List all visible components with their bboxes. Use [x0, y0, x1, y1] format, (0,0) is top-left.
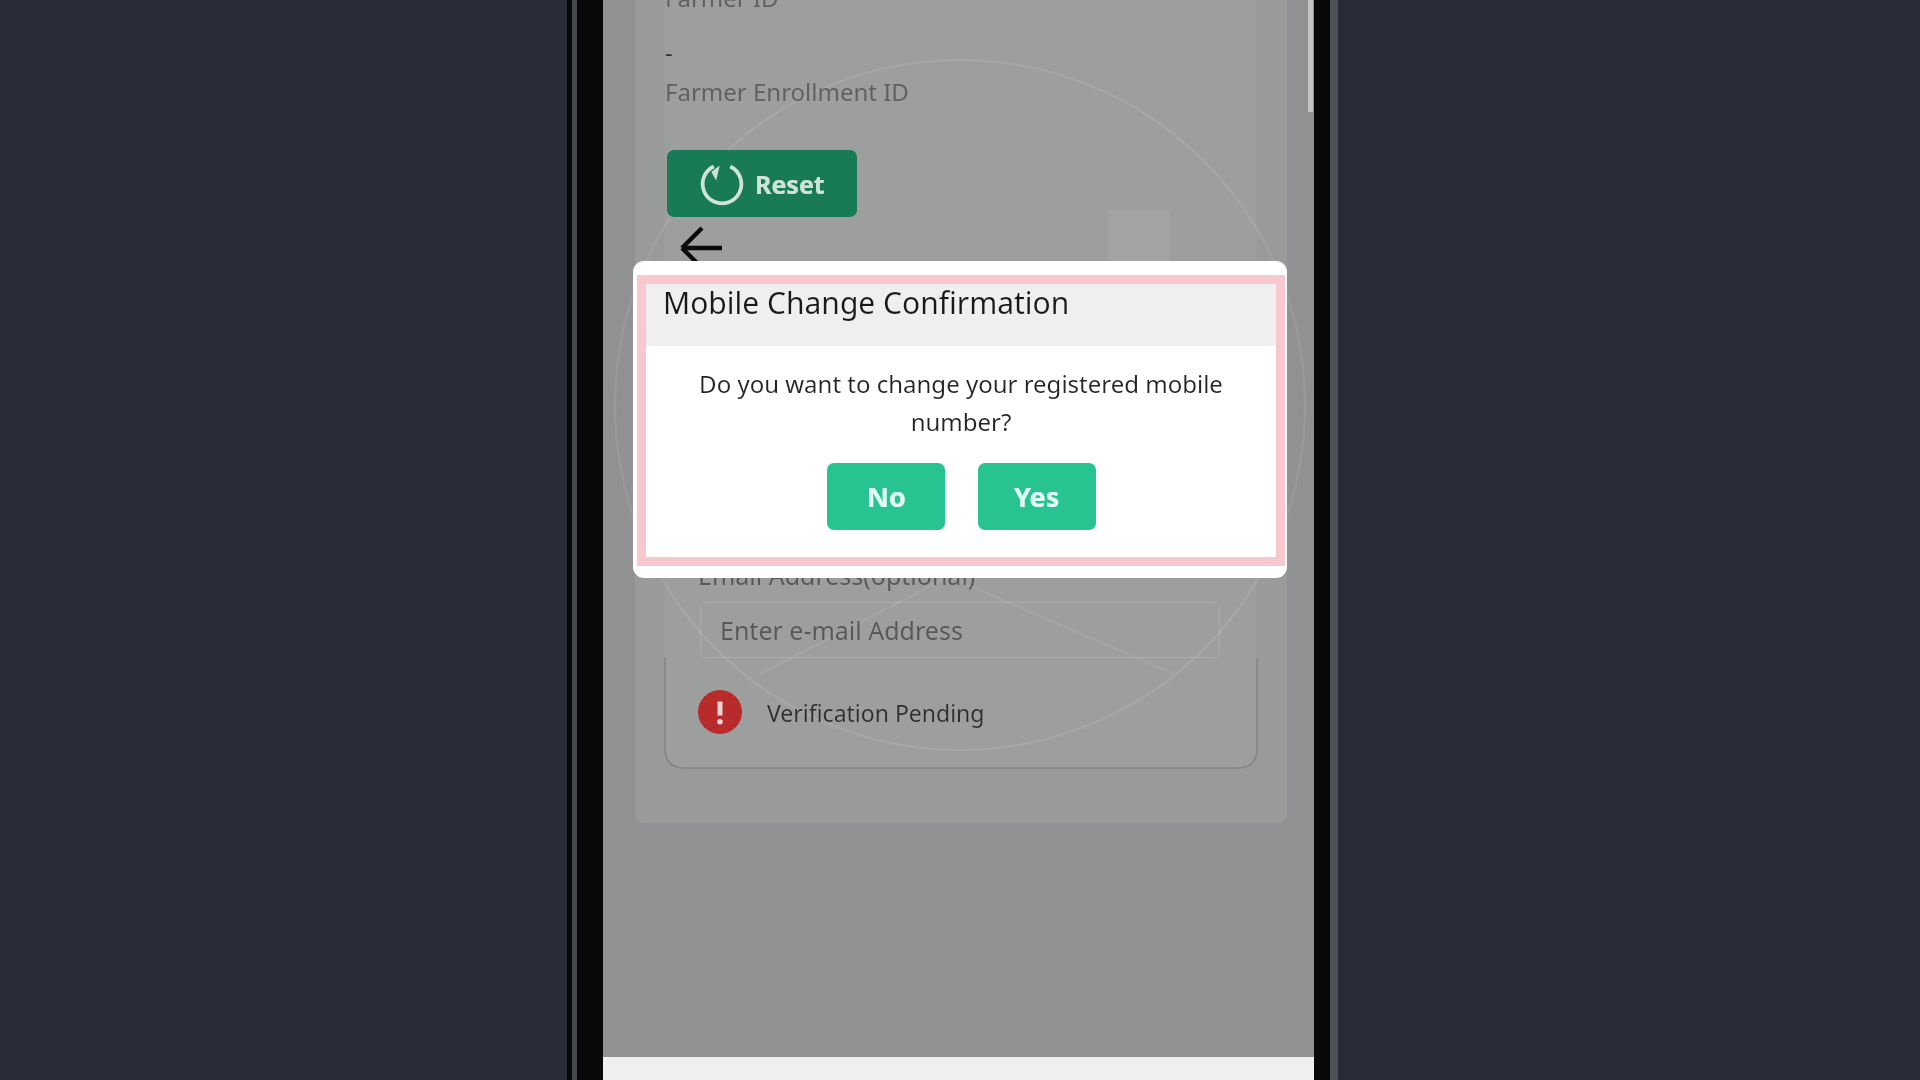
button[interactable]: Yes	[978, 463, 1096, 530]
staticText: No	[867, 478, 906, 515]
button[interactable]: Enter e-mail Address	[700, 602, 1220, 658]
button[interactable]: Back	[676, 228, 726, 268]
staticText: Reset	[755, 167, 825, 201]
staticText: Email Address(optional)	[698, 558, 976, 592]
staticText: Verification Pending	[767, 697, 985, 728]
staticText: Mobile Change Confirmation	[663, 282, 1070, 323]
button[interactable]: Reset	[667, 150, 857, 217]
staticText: Yes	[1014, 478, 1060, 515]
staticText: Farmer ID	[665, 0, 779, 14]
staticText: Enter e-mail Address	[720, 613, 963, 647]
staticText: Farmer Enrollment ID	[665, 75, 909, 108]
button[interactable]: No	[827, 463, 945, 530]
staticText: Do you want to change your registered mo…	[672, 367, 1250, 438]
staticText: -	[665, 35, 673, 68]
